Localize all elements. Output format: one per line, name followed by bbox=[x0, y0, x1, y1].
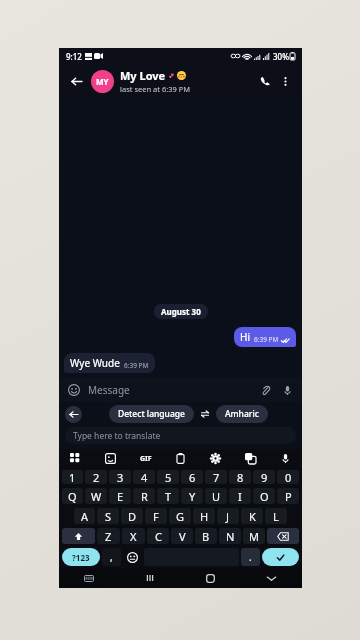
button[interactable]: Swap languages bbox=[200, 409, 210, 419]
staticText: Z bbox=[105, 529, 112, 544]
staticText: 2 bbox=[93, 470, 100, 484]
button[interactable]: GIF bbox=[137, 450, 154, 467]
button[interactable]: 4 bbox=[133, 470, 155, 484]
staticText: I bbox=[238, 489, 242, 504]
staticText: , bbox=[110, 550, 113, 564]
button[interactable]: F bbox=[145, 508, 167, 524]
button[interactable]: Hi bbox=[234, 327, 296, 347]
staticText: R bbox=[141, 489, 148, 504]
staticText: M bbox=[249, 529, 259, 544]
button[interactable]: H bbox=[193, 508, 215, 524]
button[interactable]: Recents bbox=[119, 568, 180, 588]
button[interactable]: Translate bbox=[242, 450, 259, 467]
button[interactable]: T bbox=[157, 488, 179, 504]
button[interactable]: Detect language bbox=[109, 405, 194, 423]
button[interactable]: Hide keyboard bbox=[59, 568, 119, 588]
button[interactable]: 2 bbox=[85, 470, 107, 484]
button[interactable]: Voice message bbox=[279, 382, 295, 398]
button[interactable]: Back bbox=[241, 568, 302, 588]
button[interactable]: More options bbox=[275, 71, 295, 91]
button[interactable]: 0 bbox=[277, 470, 299, 484]
button[interactable]: 8 bbox=[229, 470, 251, 484]
button[interactable]: L bbox=[265, 508, 287, 524]
button[interactable]: ?123 bbox=[62, 548, 100, 566]
button[interactable]: 6 bbox=[181, 470, 203, 484]
button[interactable]: D bbox=[121, 508, 143, 524]
button[interactable]: C bbox=[147, 528, 169, 544]
button[interactable]: Type here to translate bbox=[65, 427, 296, 444]
staticText: 3 bbox=[117, 470, 124, 484]
button[interactable]: . bbox=[241, 548, 260, 566]
staticText: last seen at 6:39 PM bbox=[120, 84, 191, 94]
button[interactable]: Amharic bbox=[216, 405, 268, 423]
button[interactable]: Stickers bbox=[102, 450, 119, 467]
staticText: 7 bbox=[213, 470, 220, 484]
button[interactable]: Q bbox=[62, 488, 83, 504]
staticText: T bbox=[165, 489, 172, 504]
staticText: P bbox=[285, 489, 292, 504]
staticText: 8 bbox=[237, 470, 244, 484]
button[interactable]: E bbox=[109, 488, 131, 504]
staticText: W bbox=[91, 489, 102, 504]
button[interactable]: M bbox=[243, 528, 265, 544]
button[interactable]: 7 bbox=[205, 470, 227, 484]
button[interactable]: 9 bbox=[253, 470, 275, 484]
button[interactable]: , bbox=[102, 548, 121, 566]
staticText: A bbox=[81, 509, 89, 524]
button[interactable]: X bbox=[122, 528, 145, 544]
button[interactable]: Emoji keyboard bbox=[123, 548, 142, 566]
staticText: 30% bbox=[273, 51, 289, 62]
staticText: ?123 bbox=[72, 552, 90, 563]
button[interactable]: Shift bbox=[62, 528, 95, 544]
button[interactable]: Wye Wude bbox=[64, 353, 155, 373]
button[interactable]: 3 bbox=[109, 470, 131, 484]
button[interactable]: Close translate bbox=[65, 406, 82, 423]
button[interactable]: Backspace bbox=[267, 528, 299, 544]
button[interactable]: Attach bbox=[257, 382, 273, 398]
staticText: S bbox=[105, 509, 112, 524]
staticText: C bbox=[155, 529, 162, 544]
button[interactable]: Clipboard bbox=[172, 450, 189, 467]
button[interactable]: 1 bbox=[62, 470, 83, 484]
button[interactable]: 5 bbox=[157, 470, 179, 484]
staticText: V bbox=[179, 529, 186, 544]
button[interactable]: K bbox=[241, 508, 263, 524]
staticText: K bbox=[249, 509, 256, 524]
button[interactable]: P bbox=[277, 488, 299, 504]
button[interactable]: Message bbox=[88, 383, 257, 397]
button[interactable]: W bbox=[85, 488, 107, 504]
staticText: E bbox=[117, 489, 124, 504]
button[interactable]: A bbox=[74, 508, 95, 524]
button[interactable]: Enter bbox=[262, 548, 299, 566]
button[interactable]: B bbox=[195, 528, 217, 544]
button[interactable]: V bbox=[171, 528, 193, 544]
button[interactable]: G bbox=[169, 508, 191, 524]
button[interactable]: S bbox=[97, 508, 119, 524]
button[interactable]: Y bbox=[181, 488, 203, 504]
button[interactable]: O bbox=[253, 488, 275, 504]
button[interactable]: R bbox=[133, 488, 155, 504]
button[interactable]: I bbox=[229, 488, 251, 504]
button[interactable]: My Love bbox=[120, 68, 255, 94]
button[interactable]: Home bbox=[180, 568, 241, 588]
staticText: J bbox=[226, 509, 230, 524]
button[interactable]: Emoji bbox=[66, 382, 82, 398]
button[interactable]: Settings bbox=[207, 450, 224, 467]
button[interactable]: Z bbox=[97, 528, 120, 544]
button[interactable]: Back bbox=[66, 71, 86, 91]
button[interactable]: U bbox=[205, 488, 227, 504]
staticText: H bbox=[200, 509, 209, 524]
staticText: Y bbox=[189, 489, 196, 504]
button[interactable]: Call bbox=[255, 71, 275, 91]
staticText: X bbox=[130, 529, 137, 544]
staticText: 4 bbox=[141, 470, 148, 484]
staticText: Type here to translate bbox=[73, 430, 161, 442]
staticText: . bbox=[249, 550, 252, 564]
button[interactable]: Voice input bbox=[277, 450, 294, 467]
button[interactable]: J bbox=[217, 508, 239, 524]
button[interactable]: N bbox=[219, 528, 241, 544]
button[interactable]: MY bbox=[91, 70, 114, 93]
button[interactable]: Keyboard modes bbox=[67, 450, 84, 467]
staticText: O bbox=[260, 489, 269, 504]
